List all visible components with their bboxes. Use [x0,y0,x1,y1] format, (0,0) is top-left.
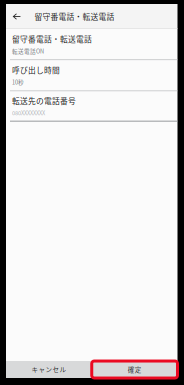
staticText: 転送電話ON [12,47,44,55]
button[interactable]: 呼び出し時間 [8,60,175,90]
staticText: 転送先の電話番号 [12,95,76,106]
staticText: 留守番電話・転送電話 [35,11,115,22]
button[interactable]: 確定 [92,361,178,378]
staticText: 確定 [128,365,142,374]
button[interactable]: 留守番電話・転送電話 [8,29,175,59]
staticText: 留守番電話・転送電話 [12,33,92,44]
staticText: 呼び出し時間 [12,64,60,75]
button[interactable]: キャンセル [6,361,92,378]
staticText: 080XXXXXXXX [12,109,45,117]
button[interactable]: 戻る [6,4,27,29]
staticText: キャンセル [31,365,66,374]
staticText: 10秒 [12,78,24,86]
